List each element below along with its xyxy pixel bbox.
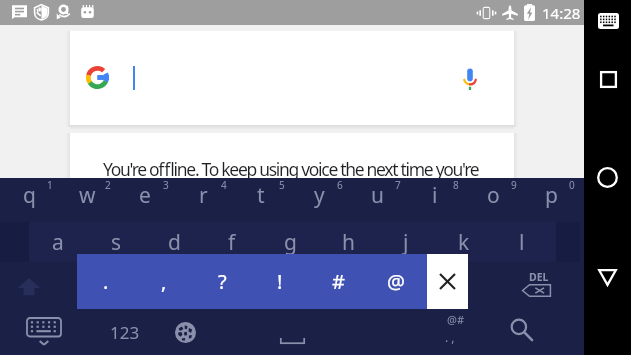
- staticText: !: [277, 268, 283, 295]
- button[interactable]: Back: [587, 257, 628, 298]
- staticText: 14:28: [542, 3, 581, 23]
- button[interactable]: b: [290, 265, 348, 310]
- staticText: i: [432, 181, 438, 210]
- staticText: o: [487, 181, 500, 210]
- button[interactable]: a: [29, 222, 87, 265]
- button[interactable]: !: [251, 254, 309, 309]
- staticText: 5: [279, 178, 285, 192]
- staticText: k: [458, 228, 470, 257]
- staticText: 4: [221, 178, 227, 192]
- staticText: s: [111, 228, 122, 257]
- button[interactable]: v: [232, 265, 290, 310]
- staticText: m: [426, 274, 445, 301]
- button[interactable]: You're offline. To keep using voice the …: [70, 133, 514, 179]
- staticText: t: [257, 181, 265, 210]
- staticText: 0: [569, 178, 575, 192]
- button[interactable]: e: [116, 178, 174, 222]
- button[interactable]: k: [435, 222, 493, 265]
- button[interactable]: t: [232, 178, 290, 222]
- staticText: 9: [511, 178, 517, 192]
- button[interactable]: Change language: [155, 310, 215, 355]
- button[interactable]: z: [58, 265, 116, 310]
- staticText: y: [314, 181, 325, 210]
- staticText: g: [284, 228, 297, 257]
- button[interactable]: s: [87, 222, 145, 265]
- button[interactable]: r: [174, 178, 232, 222]
- button[interactable]: Shift: [0, 265, 58, 310]
- button[interactable]: g: [261, 222, 319, 265]
- staticText: u: [371, 181, 384, 210]
- button[interactable]: Delete: [512, 265, 574, 310]
- button[interactable]: c: [174, 265, 232, 310]
- staticText: @: [387, 268, 405, 295]
- staticText: e: [139, 181, 151, 210]
- staticText: f: [228, 228, 236, 257]
- staticText: q: [23, 181, 36, 210]
- button[interactable]: q: [0, 178, 58, 222]
- staticText: ?: [218, 268, 227, 295]
- button[interactable]: w: [58, 178, 116, 222]
- button[interactable]: Close: [427, 254, 468, 309]
- button[interactable]: @: [367, 254, 425, 309]
- staticText: 2: [105, 178, 111, 192]
- button[interactable]: n: [348, 265, 406, 310]
- staticText: 1: [47, 178, 53, 192]
- button[interactable]: 123: [85, 310, 165, 355]
- button[interactable]: p: [522, 178, 580, 222]
- staticText: 123: [110, 321, 140, 344]
- button[interactable]: .: [77, 254, 135, 309]
- button[interactable]: Voice search: [70, 31, 514, 125]
- staticText: . ,: [445, 329, 455, 345]
- button[interactable]: ?: [193, 254, 251, 309]
- staticText: h: [342, 228, 355, 257]
- button[interactable]: y: [290, 178, 348, 222]
- button[interactable]: l: [493, 222, 551, 265]
- staticText: w: [79, 181, 96, 210]
- staticText: #: [332, 268, 345, 295]
- button[interactable]: o: [464, 178, 522, 222]
- staticText: 7: [395, 178, 401, 192]
- staticText: p: [545, 181, 558, 210]
- button[interactable]: #: [309, 254, 367, 309]
- button[interactable]: i: [406, 178, 464, 222]
- button[interactable]: f: [203, 222, 261, 265]
- staticText: @#: [447, 312, 464, 327]
- staticText: ,: [161, 268, 167, 295]
- button[interactable]: h: [319, 222, 377, 265]
- button[interactable]: x: [116, 265, 174, 310]
- button[interactable]: Hide keyboard: [10, 310, 80, 355]
- staticText: d: [168, 228, 181, 257]
- staticText: 8: [453, 178, 459, 192]
- button[interactable]: Voice search: [452, 59, 488, 95]
- staticText: j: [403, 228, 409, 257]
- button[interactable]: u: [348, 178, 406, 222]
- staticText: You're offline. To keep using voice the …: [103, 157, 479, 181]
- staticText: DEL: [529, 270, 549, 284]
- button[interactable]: Space: [220, 310, 420, 355]
- button[interactable]: Show keyboard: [587, 2, 628, 42]
- staticText: a: [52, 228, 64, 257]
- button[interactable]: d: [145, 222, 203, 265]
- button[interactable]: Search: [498, 310, 558, 355]
- staticText: 3: [163, 178, 169, 192]
- staticText: .: [103, 268, 109, 295]
- staticText: l: [519, 228, 525, 257]
- button[interactable]: Home: [587, 157, 628, 198]
- staticText: 6: [337, 178, 343, 192]
- button[interactable]: j: [377, 222, 435, 265]
- staticText: r: [199, 181, 208, 210]
- button[interactable]: Recents: [587, 59, 628, 100]
- button[interactable]: ,: [135, 254, 193, 309]
- button[interactable]: . ,: [420, 310, 490, 355]
- button[interactable]: m: [406, 265, 464, 310]
